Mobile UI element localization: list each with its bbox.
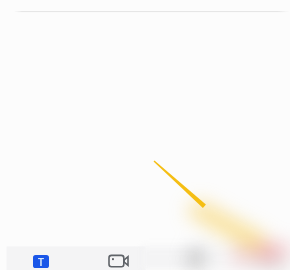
button[interactable]: Record video bbox=[107, 253, 129, 269]
staticText: T bbox=[38, 255, 44, 268]
button[interactable]: T bbox=[33, 255, 49, 268]
